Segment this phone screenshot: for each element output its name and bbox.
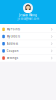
staticText: Settings [7, 56, 18, 60]
staticText: Jessica Wang [19, 13, 37, 17]
staticText: Address [7, 42, 18, 45]
button[interactable]: My Orders [0, 33, 56, 40]
staticText: Coupon [7, 49, 19, 53]
button[interactable]: Address [0, 40, 56, 47]
staticText: My Orders [7, 35, 20, 38]
button[interactable]: Settings [0, 54, 56, 62]
button[interactable]: Coupon [0, 47, 56, 54]
button[interactable]: My Points [0, 26, 56, 33]
staticText: jessica@mail.com [17, 17, 38, 20]
staticText: My Points [7, 28, 20, 31]
